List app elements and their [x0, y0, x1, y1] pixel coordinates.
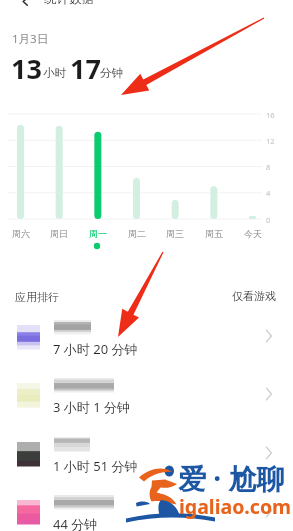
button[interactable]: [0, 376, 293, 434]
staticText: 4: [266, 188, 271, 198]
staticText: 1月3日: [12, 31, 49, 47]
button[interactable]: 周一: [81, 226, 115, 241]
staticText: 16: [266, 110, 275, 120]
button[interactable]: 周日: [42, 226, 76, 241]
staticText: 13: [11, 50, 42, 87]
staticText: 12: [266, 136, 275, 146]
staticText: igaliao.com: [179, 493, 292, 520]
button[interactable]: [0, 493, 293, 531]
button[interactable]: 周三: [158, 226, 192, 241]
button[interactable]: 今天: [236, 226, 270, 241]
button[interactable]: [0, 318, 293, 376]
staticText: 爱 · 尬聊: [178, 459, 285, 497]
staticText: 应用排行: [15, 290, 59, 304]
staticText: 今天: [244, 228, 262, 239]
staticText: 统计数据: [44, 0, 94, 7]
staticText: 周五: [205, 228, 223, 239]
staticText: 小时: [43, 66, 66, 80]
staticText: 周六: [12, 228, 30, 239]
staticText: 分钟: [100, 66, 123, 80]
staticText: 0: [266, 215, 271, 225]
staticText: 1 小时 51 分钟: [53, 457, 138, 475]
button[interactable]: [0, 435, 293, 493]
staticText: 周二: [128, 228, 146, 239]
button[interactable]: 周二: [120, 226, 154, 241]
button[interactable]: 周五: [197, 226, 231, 241]
staticText: 7 小时 20 分钟: [53, 340, 138, 358]
staticText: 44 分钟: [53, 515, 98, 531]
staticText: 周三: [166, 228, 184, 239]
staticText: 8: [266, 162, 271, 172]
button[interactable]: 周六: [4, 226, 38, 241]
staticText: 仅看游戏: [232, 289, 276, 303]
staticText: 3 小时 1 分钟: [53, 398, 131, 416]
button[interactable]: Back: [12, 0, 38, 12]
staticText: 17: [70, 50, 101, 87]
staticText: 周一: [89, 228, 107, 239]
button[interactable]: 仅看游戏: [228, 284, 280, 308]
staticText: 周日: [50, 228, 68, 239]
